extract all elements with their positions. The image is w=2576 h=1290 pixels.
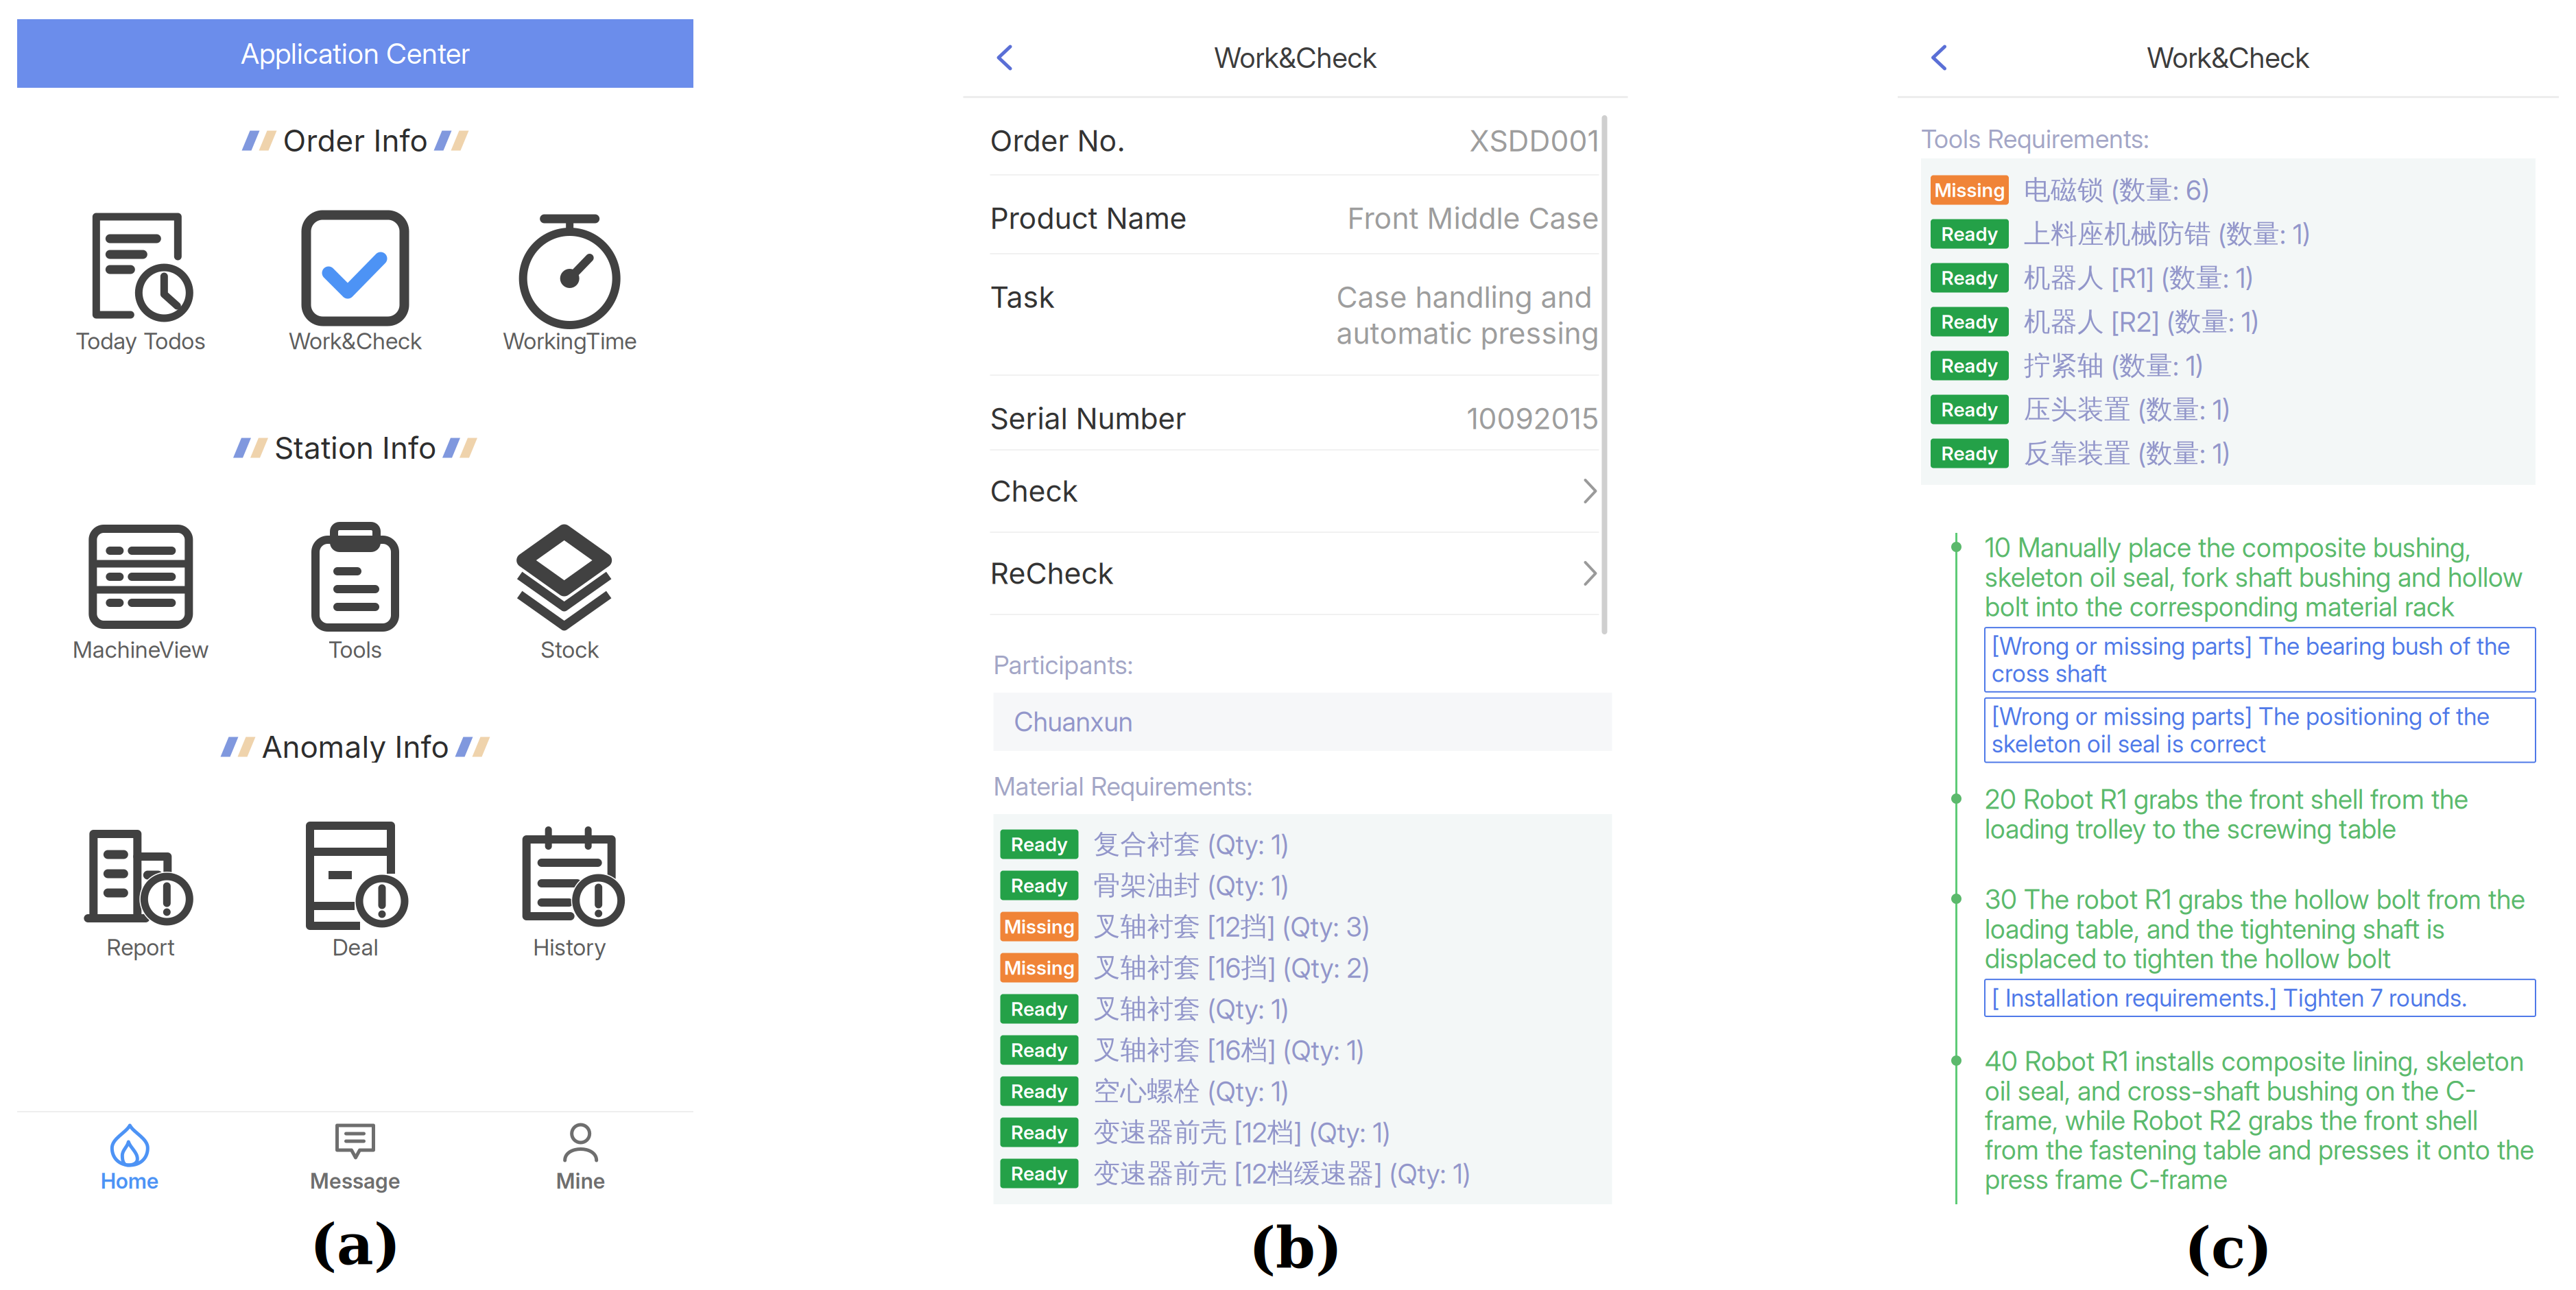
staticText: Task (990, 279, 1054, 315)
staticText: Message (310, 1168, 401, 1194)
button[interactable]: Mine (468, 1112, 693, 1195)
staticText: Tools Requirements: (1921, 123, 2149, 154)
staticText: 20 Robot R1 grabs the front shell from t… (1985, 785, 2468, 844)
staticText: Ready (1011, 1121, 1068, 1144)
staticText: 30 The robot R1 grabs the hollow bolt fr… (1985, 885, 2525, 973)
button[interactable]: Check (990, 451, 1599, 533)
button[interactable]: Stock (462, 521, 677, 662)
staticText: 复合衬套 (Qty: 1) (1094, 827, 1289, 861)
staticText: Report (107, 933, 175, 961)
staticText: Anomaly Info (262, 729, 449, 765)
staticText: 电磁锁 (数量: 6) (2024, 173, 2210, 207)
staticText: 40 Robot R1 installs composite lining, s… (1985, 1047, 2534, 1194)
staticText: Ready (1011, 997, 1068, 1020)
button[interactable]: Ready (1000, 988, 1612, 1029)
staticText: (b) (1249, 1214, 1342, 1281)
button[interactable]: Ready (1931, 257, 2536, 298)
staticText: 叉轴衬套 [16挡] (Qty: 2) (1094, 951, 1370, 984)
button[interactable]: Ready (1000, 1071, 1612, 1112)
staticText: 压头装置 (数量: 1) (2024, 393, 2230, 426)
staticText: 叉轴衬套 [12挡] (Qty: 3) (1094, 910, 1370, 943)
staticText: Ready (1011, 874, 1068, 897)
button[interactable]: MachineView (34, 521, 248, 662)
button[interactable]: Ready (1000, 1112, 1612, 1153)
staticText: Missing (1004, 915, 1075, 938)
staticText: Work&Check (2147, 40, 2310, 75)
staticText: Order No. (990, 123, 1125, 159)
staticText: XSDD001 (1469, 123, 1599, 159)
button[interactable]: Report (34, 819, 248, 960)
button[interactable]: Missing (1000, 947, 1612, 988)
staticText: Ready (1011, 833, 1068, 856)
button[interactable]: ReCheck (990, 533, 1599, 615)
staticText: Tools (328, 636, 382, 663)
button[interactable]: Chuanxun (993, 693, 1612, 751)
button[interactable]: Ready (1931, 345, 2536, 386)
button[interactable]: Tools (248, 521, 463, 662)
staticText: ReCheck (990, 555, 1113, 591)
button[interactable]: Back (987, 20, 1022, 95)
button[interactable]: Ready (1931, 389, 2536, 430)
button[interactable]: Ready (1000, 865, 1612, 906)
staticText: Today Todos (76, 327, 206, 355)
button[interactable]: Work&Check (248, 213, 463, 354)
staticText: WorkingTime (503, 327, 637, 355)
button[interactable]: Ready (1931, 213, 2536, 254)
staticText: MachineView (73, 636, 209, 663)
button[interactable]: Missing (1000, 906, 1612, 947)
staticText: 10092015 (1467, 401, 1599, 437)
staticText: Ready (1941, 398, 1998, 421)
staticText: [Wrong or missing parts] The positioning… (1992, 703, 2490, 757)
button[interactable]: Home (17, 1112, 243, 1195)
staticText: Product Name (990, 200, 1187, 236)
button[interactable]: Deal (248, 819, 463, 960)
staticText: History (533, 933, 606, 961)
staticText: 机器人 [R2] (数量: 1) (2024, 305, 2259, 338)
staticText: (a) (310, 1211, 401, 1278)
staticText: [ Installation requirements.] Tighten 7 … (1992, 984, 2467, 1011)
staticText: Chuanxun (1014, 706, 1133, 738)
staticText: 机器人 [R1] (数量: 1) (2024, 261, 2254, 294)
staticText: Application Center (241, 36, 470, 71)
staticText: 10 Manually place the composite bushing,… (1985, 533, 2523, 621)
staticText: 叉轴衬套 (Qty: 1) (1094, 992, 1289, 1025)
button[interactable]: Back (1921, 20, 1957, 95)
staticText: Order Info (283, 122, 428, 159)
button[interactable]: History (462, 819, 677, 960)
button[interactable]: Ready (1000, 1153, 1612, 1194)
staticText: Home (101, 1168, 159, 1194)
button[interactable]: Ready (1931, 433, 2536, 474)
staticText: 反靠装置 (数量: 1) (2024, 437, 2230, 470)
staticText: 上料座机械防错 (数量: 1) (2024, 217, 2311, 251)
staticText: 变速器前壳 [12档] (Qty: 1) (1094, 1116, 1391, 1149)
staticText: Ready (1011, 1038, 1068, 1062)
button[interactable]: Today Todos (34, 213, 248, 354)
staticText: Case handling and automatic pressing (1336, 279, 1599, 351)
staticText: Missing (1004, 956, 1075, 979)
staticText: Front Middle Case (1347, 200, 1599, 236)
button[interactable]: Missing (1931, 169, 2536, 211)
staticText: Ready (1941, 266, 1998, 289)
staticText: Work&Check (289, 327, 422, 355)
staticText: Ready (1941, 310, 1998, 333)
staticText: Material Requirements: (993, 771, 1253, 802)
staticText: 骨架油封 (Qty: 1) (1094, 869, 1289, 902)
staticText: Ready (1941, 354, 1998, 377)
staticText: 变速器前壳 [12档缓速器] (Qty: 1) (1094, 1157, 1471, 1190)
button[interactable]: WorkingTime (462, 213, 677, 354)
button[interactable]: Ready (1000, 824, 1612, 865)
staticText: Participants: (993, 649, 1133, 680)
button[interactable]: Ready (1000, 1029, 1612, 1071)
staticText: 叉轴衬套 [16档] (Qty: 1) (1094, 1033, 1364, 1067)
button[interactable]: Ready (1931, 301, 2536, 342)
staticText: [Wrong or missing parts] The bearing bus… (1992, 632, 2510, 687)
staticText: Serial Number (990, 401, 1186, 437)
staticText: Station Info (274, 430, 436, 466)
staticText: 空心螺栓 (Qty: 1) (1094, 1074, 1289, 1108)
staticText: Missing (1934, 178, 2005, 202)
button[interactable]: Message (243, 1112, 468, 1195)
staticText: Deal (332, 933, 378, 961)
staticText: 拧紧轴 (数量: 1) (2024, 349, 2204, 382)
staticText: Ready (1011, 1162, 1068, 1185)
staticText: (c) (2184, 1214, 2272, 1281)
